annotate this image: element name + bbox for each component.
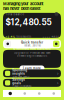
button[interactable]: Learn more	[19, 65, 44, 71]
staticText: ›	[57, 71, 59, 76]
button[interactable]: Savings goals	[0, 79, 64, 87]
staticText: Upgrade to Premium and save	[14, 51, 50, 54]
staticText: 2 goals in progress	[12, 85, 31, 88]
staticText: on every single transaction.	[16, 54, 47, 57]
staticText: +2.4%	[5, 35, 15, 38]
button[interactable]: Cards	[17, 90, 32, 97]
staticText: ···	[55, 12, 58, 16]
staticText: this month	[16, 35, 31, 38]
button[interactable]: More options	[54, 12, 58, 16]
staticText: Instant, zero fee	[23, 44, 40, 47]
button[interactable]: Request	[53, 41, 59, 47]
staticText: $12,480.55	[5, 17, 51, 27]
button[interactable]: Spending insights	[0, 69, 64, 77]
button[interactable]: More	[46, 90, 61, 97]
staticText: Track your habits	[12, 75, 29, 78]
staticText: Total balance	[5, 13, 24, 16]
staticText: Savings goals	[12, 78, 25, 85]
staticText: •••• 4821	[42, 35, 58, 38]
staticText: Spending insights	[12, 68, 27, 75]
staticText: Managing your account has never been eas…	[3, 1, 43, 11]
button[interactable]: Stats	[32, 90, 46, 97]
button[interactable]: Send	[4, 41, 11, 47]
button[interactable]: Home	[3, 90, 17, 97]
staticText: Unlimited free transfers	[13, 46, 51, 50]
staticText: Quick transfer	[21, 41, 43, 44]
staticText: ›	[57, 80, 59, 85]
staticText: Learn more	[23, 67, 41, 70]
